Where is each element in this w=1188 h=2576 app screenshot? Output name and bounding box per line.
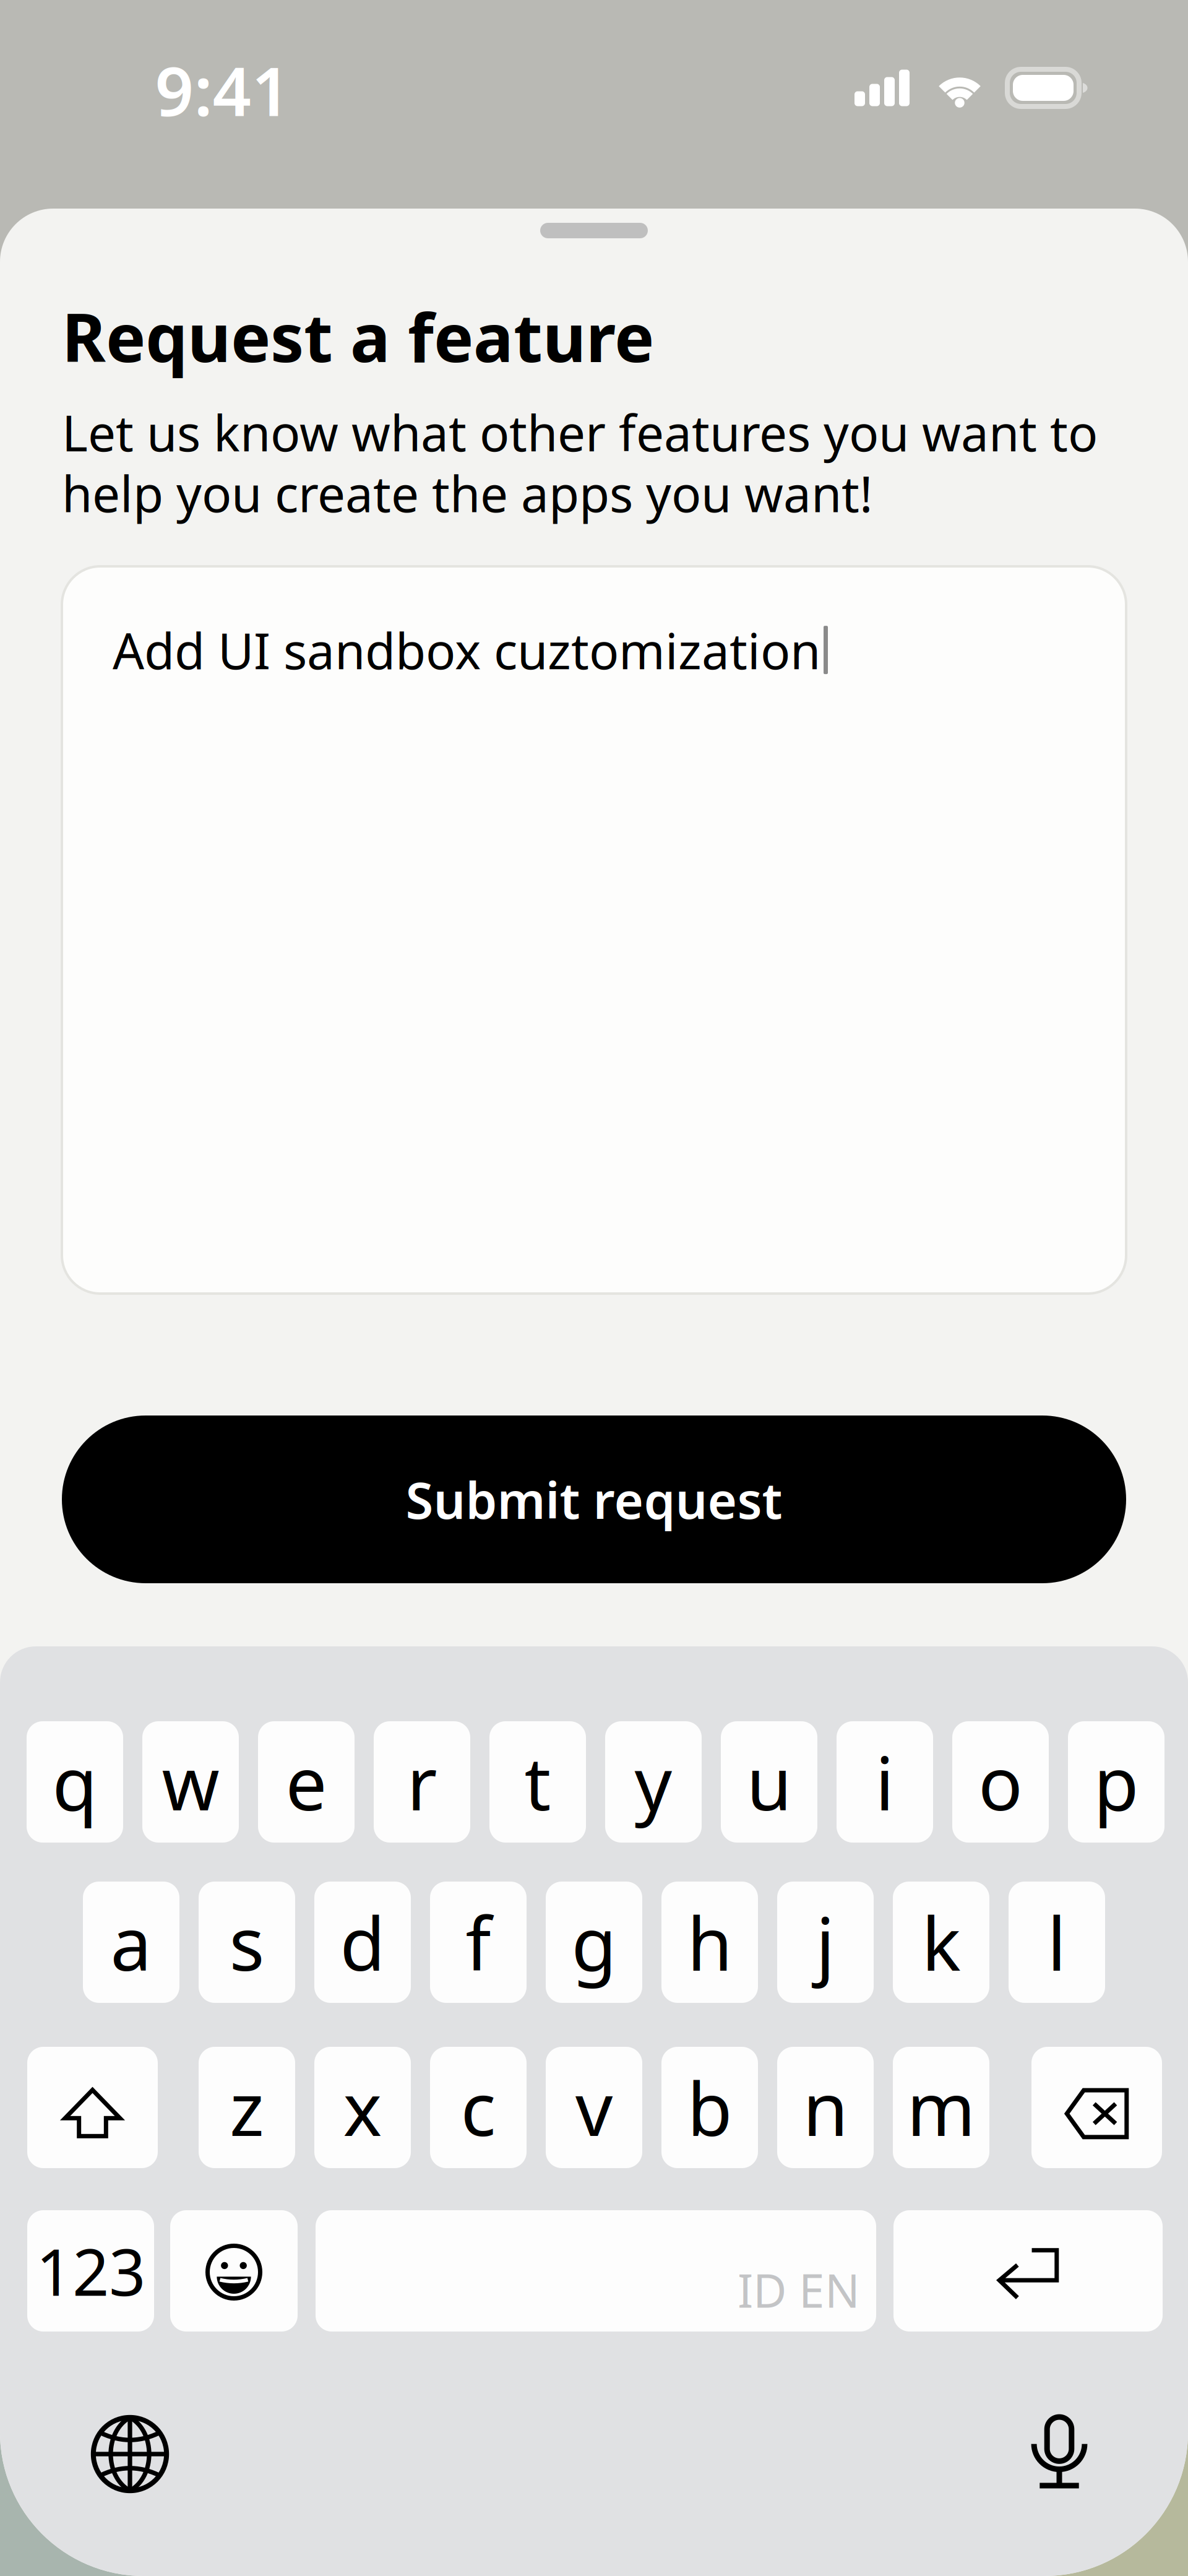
button[interactable]: y [605,1721,702,1843]
button[interactable]: 123 [27,2210,154,2332]
button[interactable]: z [199,2047,295,2168]
staticText: j [816,1893,835,1991]
staticText: n [803,2059,848,2156]
button[interactable]: u [721,1721,817,1843]
button[interactable]: o [952,1721,1049,1843]
button[interactable]: l [1009,1882,1105,2003]
staticText: p [1094,1733,1139,1831]
staticText: e [286,1733,327,1831]
staticText: i [875,1733,894,1831]
button[interactable]: j [777,1882,874,2003]
button[interactable]: g [546,1882,642,2003]
button[interactable]: d [314,1882,411,2003]
staticText: b [687,2059,732,2156]
button[interactable]: k [893,1882,989,2003]
button[interactable]: e [258,1721,355,1843]
staticText: u [747,1733,792,1831]
staticText: q [52,1733,97,1831]
staticText: t [524,1733,551,1831]
button[interactable]: t [489,1721,586,1843]
staticText: ID EN [738,2259,860,2320]
staticText: l [1047,1893,1066,1991]
staticText: o [978,1733,1023,1831]
staticText: Let us know what other features you want… [62,399,1098,526]
button[interactable]: v [546,2047,642,2168]
button[interactable]: Shift [27,2047,158,2168]
staticText: d [340,1893,385,1991]
staticText: y [635,1733,672,1831]
button[interactable]: w [142,1721,239,1843]
button[interactable]: Delete [1031,2047,1162,2168]
staticText: 123 [36,2228,145,2314]
staticText: f [466,1893,491,1991]
button[interactable]: f [430,1882,527,2003]
staticText: h [687,1893,732,1991]
button[interactable]: Return [893,2210,1163,2332]
button[interactable]: Emoji [170,2210,298,2332]
button[interactable]: Submit request [62,1416,1126,1583]
staticText: z [230,2059,264,2156]
staticText: k [922,1893,961,1991]
staticText: m [907,2059,975,2156]
button[interactable]: r [374,1721,470,1843]
button[interactable]: c [430,2047,527,2168]
button[interactable]: i [837,1721,933,1843]
button[interactable]: x [314,2047,411,2168]
button[interactable]: n [777,2047,874,2168]
staticText: g [571,1893,617,1991]
button[interactable]: h [661,1882,758,2003]
button[interactable]: p [1068,1721,1164,1843]
staticText: 9:41 [155,45,291,135]
button[interactable]: Dictation [1018,2413,1100,2495]
button[interactable]: Next keyboard [90,2414,170,2494]
staticText: a [110,1893,152,1991]
staticText: s [229,1893,265,1991]
button[interactable]: q [27,1721,123,1843]
staticText: Add UI sandbox cuztomization [113,617,820,683]
staticText: v [575,2059,613,2156]
staticText: Request a feature [62,292,654,380]
staticText: w [162,1733,219,1831]
button[interactable]: b [661,2047,758,2168]
button[interactable]: a [83,1882,179,2003]
button[interactable]: m [893,2047,989,2168]
staticText: x [343,2059,382,2156]
button[interactable]: space [316,2210,876,2332]
staticText: c [461,2059,496,2156]
button[interactable]: s [199,1882,295,2003]
staticText: r [407,1733,437,1831]
staticText: Submit request [406,1466,782,1533]
